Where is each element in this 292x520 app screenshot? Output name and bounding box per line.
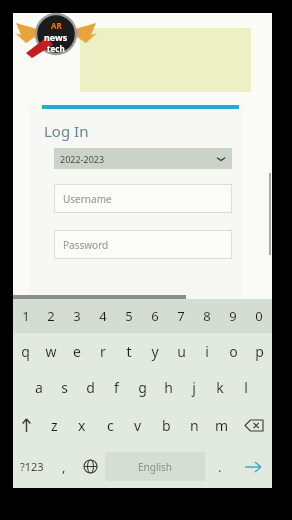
- staticText: o: [229, 342, 238, 361]
- button[interactable]: n: [180, 405, 208, 445]
- staticText: i: [205, 342, 209, 361]
- button[interactable]: Password: [54, 230, 232, 259]
- staticText: 3: [73, 307, 81, 325]
- button[interactable]: a: [26, 369, 51, 405]
- staticText: Log In: [44, 121, 89, 141]
- button[interactable]: z: [40, 405, 68, 445]
- staticText: w: [45, 342, 57, 361]
- staticText: f: [114, 378, 119, 397]
- button[interactable]: 7: [168, 299, 194, 333]
- staticText: Password: [63, 238, 109, 252]
- button[interactable]: q: [13, 333, 38, 369]
- staticText: v: [134, 416, 142, 435]
- staticText: English: [138, 460, 173, 474]
- staticText: y: [151, 342, 159, 361]
- staticText: a: [35, 378, 43, 397]
- staticText: news: [44, 31, 68, 43]
- staticText: x: [78, 416, 86, 435]
- button[interactable]: h: [155, 369, 181, 405]
- button[interactable]: ,: [51, 445, 77, 488]
- staticText: 1: [22, 307, 30, 325]
- staticText: c: [107, 416, 114, 435]
- staticText: r: [100, 342, 106, 361]
- button[interactable]: s: [51, 369, 77, 405]
- button[interactable]: k: [207, 369, 233, 405]
- staticText: b: [162, 416, 171, 435]
- staticText: g: [138, 378, 147, 397]
- button[interactable]: g: [129, 369, 155, 405]
- button[interactable]: Next: [233, 445, 272, 488]
- button[interactable]: 4: [90, 299, 116, 333]
- button[interactable]: Change language: [77, 445, 103, 488]
- button[interactable]: 0: [246, 299, 272, 333]
- staticText: s: [61, 378, 68, 397]
- button[interactable]: d: [77, 369, 103, 405]
- staticText: 2: [47, 307, 55, 325]
- button[interactable]: 1: [13, 299, 38, 333]
- staticText: .: [218, 458, 222, 476]
- staticText: AR: [51, 20, 62, 31]
- button[interactable]: Username: [54, 184, 232, 213]
- button[interactable]: Shift: [13, 405, 40, 445]
- button[interactable]: 6: [142, 299, 168, 333]
- staticText: u: [177, 342, 186, 361]
- button[interactable]: 3: [64, 299, 90, 333]
- staticText: 6: [151, 307, 159, 325]
- staticText: z: [51, 416, 58, 435]
- staticText: e: [73, 342, 81, 361]
- button[interactable]: m: [208, 405, 236, 445]
- button[interactable]: o: [220, 333, 246, 369]
- staticText: h: [164, 378, 173, 397]
- button[interactable]: y: [142, 333, 168, 369]
- staticText: 2022-2023: [60, 153, 105, 165]
- button[interactable]: 2: [38, 299, 64, 333]
- button[interactable]: 2022-2023: [54, 148, 232, 169]
- button[interactable]: b: [152, 405, 180, 445]
- button[interactable]: f: [103, 369, 129, 405]
- button[interactable]: 8: [194, 299, 220, 333]
- staticText: l: [244, 378, 248, 397]
- staticText: 8: [203, 307, 211, 325]
- button[interactable]: w: [38, 333, 64, 369]
- button[interactable]: e: [64, 333, 90, 369]
- staticText: 7: [177, 307, 185, 325]
- button[interactable]: t: [116, 333, 142, 369]
- button[interactable]: r: [90, 333, 116, 369]
- staticText: d: [86, 378, 95, 397]
- staticText: ?123: [20, 459, 44, 474]
- button[interactable]: c: [96, 405, 124, 445]
- staticText: ,: [62, 458, 66, 476]
- staticText: k: [216, 378, 224, 397]
- button[interactable]: v: [124, 405, 152, 445]
- button[interactable]: 9: [220, 299, 246, 333]
- staticText: q: [21, 342, 30, 361]
- staticText: m: [215, 416, 229, 435]
- button[interactable]: j: [181, 369, 207, 405]
- button[interactable]: p: [246, 333, 272, 369]
- staticText: n: [190, 416, 199, 435]
- button[interactable]: i: [194, 333, 220, 369]
- staticText: 0: [255, 307, 263, 325]
- staticText: 4: [99, 307, 107, 325]
- button[interactable]: Backspace: [236, 405, 272, 445]
- button[interactable]: x: [68, 405, 96, 445]
- staticText: tech: [47, 43, 65, 54]
- button[interactable]: .: [207, 445, 233, 488]
- staticText: 5: [125, 307, 133, 325]
- staticText: t: [126, 342, 132, 361]
- button[interactable]: English: [105, 452, 205, 481]
- button[interactable]: l: [233, 369, 259, 405]
- button[interactable]: ?123: [13, 445, 51, 488]
- staticText: p: [255, 342, 264, 361]
- staticText: Username: [63, 192, 112, 206]
- button[interactable]: 5: [116, 299, 142, 333]
- staticText: 9: [229, 307, 237, 325]
- button[interactable]: u: [168, 333, 194, 369]
- staticText: j: [192, 378, 196, 397]
